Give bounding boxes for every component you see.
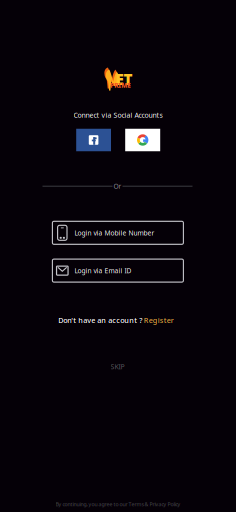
staticText: Login via Mobile Number bbox=[75, 228, 155, 237]
button[interactable]: SKIP bbox=[110, 362, 124, 371]
staticText: Connect via Social Accounts bbox=[73, 110, 162, 120]
button[interactable]: Login via Mobile Number bbox=[52, 221, 183, 244]
staticText: PRIME bbox=[110, 81, 131, 90]
staticText: Register bbox=[144, 315, 174, 325]
staticText: By continuing, you agree to our Terms & … bbox=[55, 501, 180, 508]
button[interactable]: Login via Email ID bbox=[52, 259, 183, 282]
staticText: ET bbox=[115, 69, 132, 90]
button[interactable]: Register bbox=[144, 315, 174, 325]
staticText: Don't have an account ? bbox=[58, 315, 142, 325]
staticText: Or bbox=[113, 182, 121, 191]
staticText: SKIP bbox=[110, 362, 124, 371]
staticText: Login via Email ID bbox=[75, 266, 132, 275]
button[interactable]: Continue with Facebook bbox=[76, 129, 111, 151]
button[interactable]: Continue with Google bbox=[125, 129, 160, 151]
